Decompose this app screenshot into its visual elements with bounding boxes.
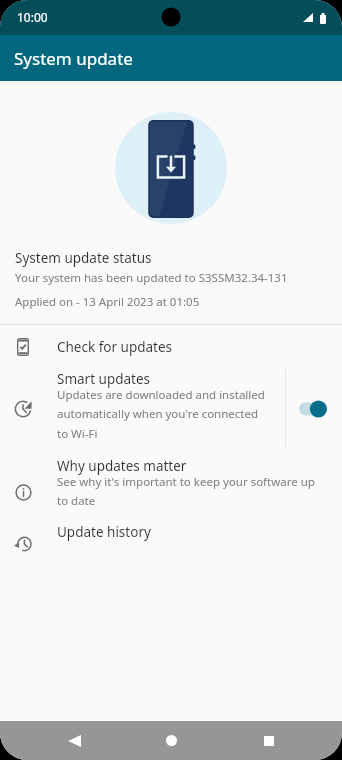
staticText: Applied on - 13 April 2023 at 01:05 [15,294,200,310]
button[interactable]: Check for updates [0,325,342,370]
staticText: Update history [57,523,151,541]
staticText: System update status [15,249,152,267]
button[interactable]: Back [50,721,98,760]
button[interactable]: Home [147,721,195,760]
button[interactable]: Smart updates toggle [286,370,342,452]
staticText: 10:00 [17,9,48,25]
button[interactable]: Recents [245,721,293,760]
button[interactable]: Update history [0,521,342,563]
staticText: Your system has been updated to S3SSM32.… [15,270,288,286]
staticText: Why updates matter [57,457,187,475]
button[interactable]: Why updates matter [0,455,342,520]
staticText: See why it's important to keep your soft… [57,474,319,509]
staticText: Check for updates [57,338,173,356]
staticText: Smart updates [57,370,151,388]
button[interactable]: Smart updates [0,370,284,452]
staticText: Updates are downloaded and installed aut… [57,387,268,442]
staticText: System update [14,47,133,70]
